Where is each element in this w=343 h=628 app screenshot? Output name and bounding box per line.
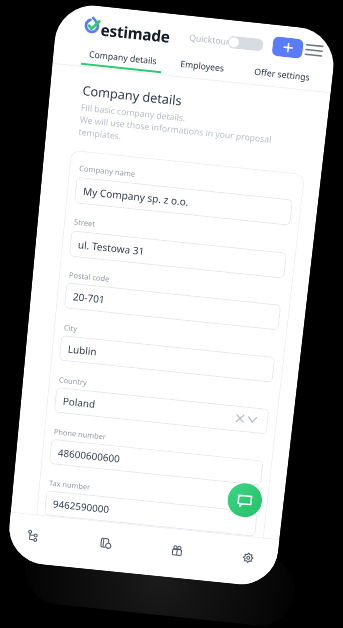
staticText: Quicktour — [189, 31, 230, 48]
staticText: Company details — [89, 48, 158, 68]
button[interactable]: My Company sp. z o.o. — [74, 177, 293, 226]
staticText: 48600600600 — [57, 445, 121, 465]
button[interactable]: Offer settings — [254, 65, 311, 84]
button[interactable]: Employees — [180, 58, 226, 75]
button[interactable]: Offers — [164, 537, 190, 563]
staticText: Poland — [62, 394, 96, 411]
button[interactable]: Company details — [89, 48, 158, 68]
button[interactable]: Chat — [226, 482, 264, 519]
staticText: estimade — [100, 19, 171, 47]
button[interactable]: ul. Testowa 31 — [69, 230, 287, 279]
staticText: Employees — [180, 58, 226, 75]
staticText: Company name — [79, 163, 136, 179]
staticText: Offer settings — [254, 65, 311, 84]
button[interactable]: Settings — [235, 545, 261, 570]
button[interactable]: 48600600600 — [49, 439, 264, 486]
staticText: Fill basic company details. We will use … — [78, 101, 273, 158]
button[interactable]: 20-701 — [64, 282, 281, 330]
staticText: Street — [74, 216, 96, 229]
staticText: 9462590000 — [52, 497, 110, 516]
button[interactable]: Lublin — [59, 335, 275, 383]
staticText: 20-701 — [72, 289, 105, 306]
staticText: Postal code — [69, 270, 110, 284]
staticText: My Company sp. z o.o. — [82, 184, 190, 209]
staticText: City — [63, 322, 78, 334]
button[interactable]: Menu — [305, 44, 323, 57]
button[interactable]: 9462590000 — [44, 490, 258, 537]
staticText: Lublin — [67, 342, 97, 358]
button[interactable]: Documents — [93, 530, 118, 555]
staticText: Company details — [82, 82, 183, 110]
staticText: ul. Testowa 31 — [77, 237, 146, 258]
button[interactable]: Workflow — [19, 523, 45, 548]
staticText: Phone number — [53, 426, 107, 441]
staticText: Tax number — [49, 478, 91, 492]
button[interactable]: Poland — [54, 387, 269, 434]
button[interactable]: Quicktour toggle — [227, 35, 264, 52]
staticText: Country — [58, 375, 88, 387]
button[interactable]: Add — [271, 36, 304, 59]
